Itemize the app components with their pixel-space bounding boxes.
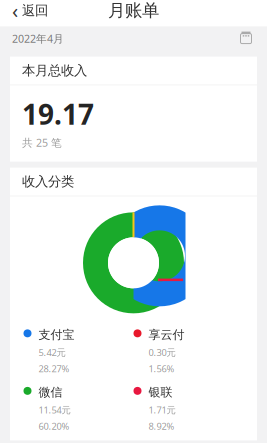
staticText: 5.42元: [38, 346, 65, 358]
staticText: 11.54元: [38, 404, 70, 416]
staticText: 2022年4月: [12, 31, 64, 46]
staticText: 支付宝: [38, 327, 74, 342]
staticText: 1.71元: [148, 404, 175, 416]
button[interactable]: ‹: [0, 0, 58, 27]
staticText: 享云付: [148, 327, 184, 342]
staticText: 微信: [38, 385, 62, 400]
staticText: 60.20%: [38, 420, 69, 432]
button[interactable]: 享云付: [133, 327, 243, 375]
button[interactable]: 支付宝: [23, 327, 133, 375]
staticText: 本月总收入: [22, 62, 87, 79]
staticText: 银联: [148, 385, 172, 400]
button[interactable]: 微信: [23, 385, 133, 432]
staticText: 月账单: [108, 0, 159, 21]
button[interactable]: 选择月份: [237, 30, 255, 48]
staticText: 收入分类: [22, 173, 74, 190]
staticText: 28.27%: [38, 362, 69, 375]
staticText: 19.17: [22, 95, 94, 132]
staticText: 共 25 笔: [22, 135, 62, 150]
staticText: 返回: [22, 2, 48, 19]
staticText: 0.30元: [148, 346, 175, 358]
staticText: 1.56%: [148, 362, 174, 375]
staticText: ‹: [12, 0, 18, 24]
button[interactable]: 银联: [133, 385, 243, 432]
staticText: 8.92%: [148, 420, 174, 432]
